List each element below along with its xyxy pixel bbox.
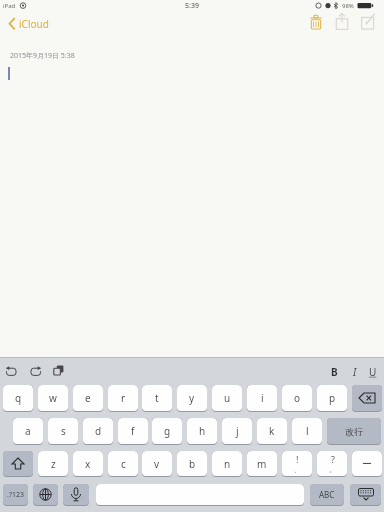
staticText: B <box>331 365 338 379</box>
staticText: iCloud <box>19 17 49 31</box>
staticText: ! <box>296 453 299 465</box>
staticText: w <box>49 391 57 405</box>
button[interactable]: a <box>13 418 43 445</box>
staticText: iPad <box>3 2 16 10</box>
button[interactable]: B <box>327 364 341 380</box>
staticText: 改行 <box>345 426 363 437</box>
staticText: c <box>121 457 126 471</box>
button[interactable]: q <box>3 385 33 412</box>
button[interactable] <box>33 484 58 506</box>
button[interactable]: iCloud <box>4 14 70 34</box>
button[interactable]: f <box>118 418 148 445</box>
button[interactable]: ABC <box>310 484 344 506</box>
button[interactable]: z <box>38 451 68 477</box>
button[interactable] <box>96 484 304 506</box>
staticText: ABC <box>319 489 335 500</box>
button[interactable]: w <box>38 385 68 412</box>
button[interactable]: t <box>142 385 172 412</box>
staticText: p <box>329 391 336 405</box>
staticText: .?123 <box>7 490 24 500</box>
button[interactable] <box>50 362 68 380</box>
staticText: z <box>51 457 56 471</box>
staticText: s <box>61 424 66 438</box>
staticText: U <box>369 365 377 379</box>
button[interactable]: U <box>366 364 380 380</box>
button[interactable] <box>3 362 21 380</box>
button[interactable]: ! <box>282 451 312 477</box>
staticText: b <box>189 457 196 471</box>
button[interactable]: i <box>247 385 277 412</box>
staticText: 5:39 <box>185 1 199 11</box>
staticText: 、 <box>294 465 301 474</box>
button[interactable] <box>3 451 33 477</box>
button[interactable]: e <box>73 385 103 412</box>
button[interactable]: k <box>257 418 287 445</box>
button[interactable]: 改行 <box>327 418 381 445</box>
button[interactable]: ? <box>317 451 347 477</box>
staticText: g <box>164 424 171 438</box>
button[interactable] <box>350 484 381 506</box>
button[interactable]: c <box>108 451 138 477</box>
button[interactable] <box>63 484 89 506</box>
staticText: q <box>15 391 22 405</box>
staticText: i <box>261 391 264 405</box>
staticText: n <box>224 457 231 471</box>
button[interactable]: r <box>108 385 138 412</box>
staticText: l <box>306 424 309 438</box>
staticText: u <box>224 391 231 405</box>
staticText: f <box>131 424 135 438</box>
staticText: ? <box>331 453 335 465</box>
button[interactable] <box>352 385 382 412</box>
staticText: v <box>154 457 160 471</box>
button[interactable]: ー <box>352 451 382 477</box>
button[interactable] <box>26 362 44 380</box>
button[interactable]: u <box>212 385 242 412</box>
button[interactable] <box>358 11 380 33</box>
staticText: h <box>199 424 206 438</box>
staticText: k <box>269 424 275 438</box>
button[interactable]: I <box>348 364 361 380</box>
button[interactable]: h <box>187 418 217 445</box>
button[interactable]: y <box>177 385 207 412</box>
staticText: m <box>257 457 267 471</box>
staticText: j <box>236 424 239 438</box>
staticText: ー <box>362 457 372 470</box>
button[interactable]: g <box>152 418 182 445</box>
button[interactable] <box>306 12 326 32</box>
staticText: 2015年9月19日 5:38 <box>10 51 75 61</box>
staticText: y <box>189 391 195 405</box>
staticText: x <box>85 457 91 471</box>
button[interactable] <box>332 11 352 33</box>
button[interactable]: x <box>73 451 103 477</box>
staticText: o <box>294 391 301 405</box>
button[interactable]: p <box>317 385 347 412</box>
button[interactable]: o <box>282 385 312 412</box>
button[interactable]: j <box>222 418 252 445</box>
staticText: 。 <box>329 465 336 474</box>
button[interactable]: b <box>177 451 207 477</box>
button[interactable]: n <box>212 451 242 477</box>
staticText: d <box>95 424 102 438</box>
button[interactable]: .?123 <box>3 484 28 506</box>
staticText: e <box>85 391 91 405</box>
staticText: a <box>25 424 31 438</box>
staticText: r <box>121 391 126 405</box>
button[interactable]: v <box>142 451 172 477</box>
button[interactable]: s <box>48 418 78 445</box>
button[interactable]: l <box>292 418 322 445</box>
button[interactable]: d <box>83 418 113 445</box>
button[interactable]: m <box>247 451 277 477</box>
staticText: t <box>155 391 159 405</box>
staticText: 98% <box>342 2 354 10</box>
staticText: I <box>353 365 357 379</box>
